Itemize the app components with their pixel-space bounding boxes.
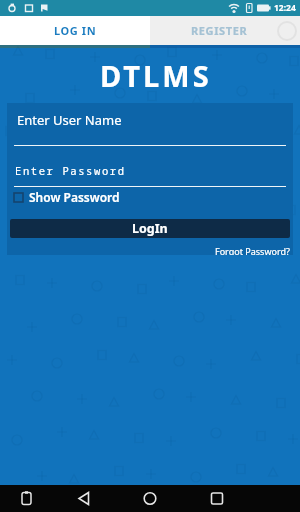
staticText: DTLMS — [100, 56, 212, 95]
button[interactable]: REGISTER — [150, 16, 300, 45]
button[interactable]: Forgot Password? — [215, 245, 290, 255]
button[interactable]: LogIn — [10, 219, 290, 238]
button[interactable] — [0, 485, 100, 512]
staticText: Enter User Name — [17, 111, 122, 129]
staticText: REGISTER — [191, 23, 248, 38]
staticText: LOG IN — [54, 23, 97, 38]
staticText: Enter Password — [15, 164, 126, 178]
button[interactable]: LOG IN — [0, 16, 150, 45]
button[interactable] — [200, 485, 300, 512]
staticText: LogIn — [132, 220, 168, 237]
button[interactable] — [100, 485, 200, 512]
button[interactable]: Show Password — [13, 189, 120, 205]
staticText: 12:24 — [274, 2, 296, 14]
staticText: Show Password — [29, 189, 120, 205]
